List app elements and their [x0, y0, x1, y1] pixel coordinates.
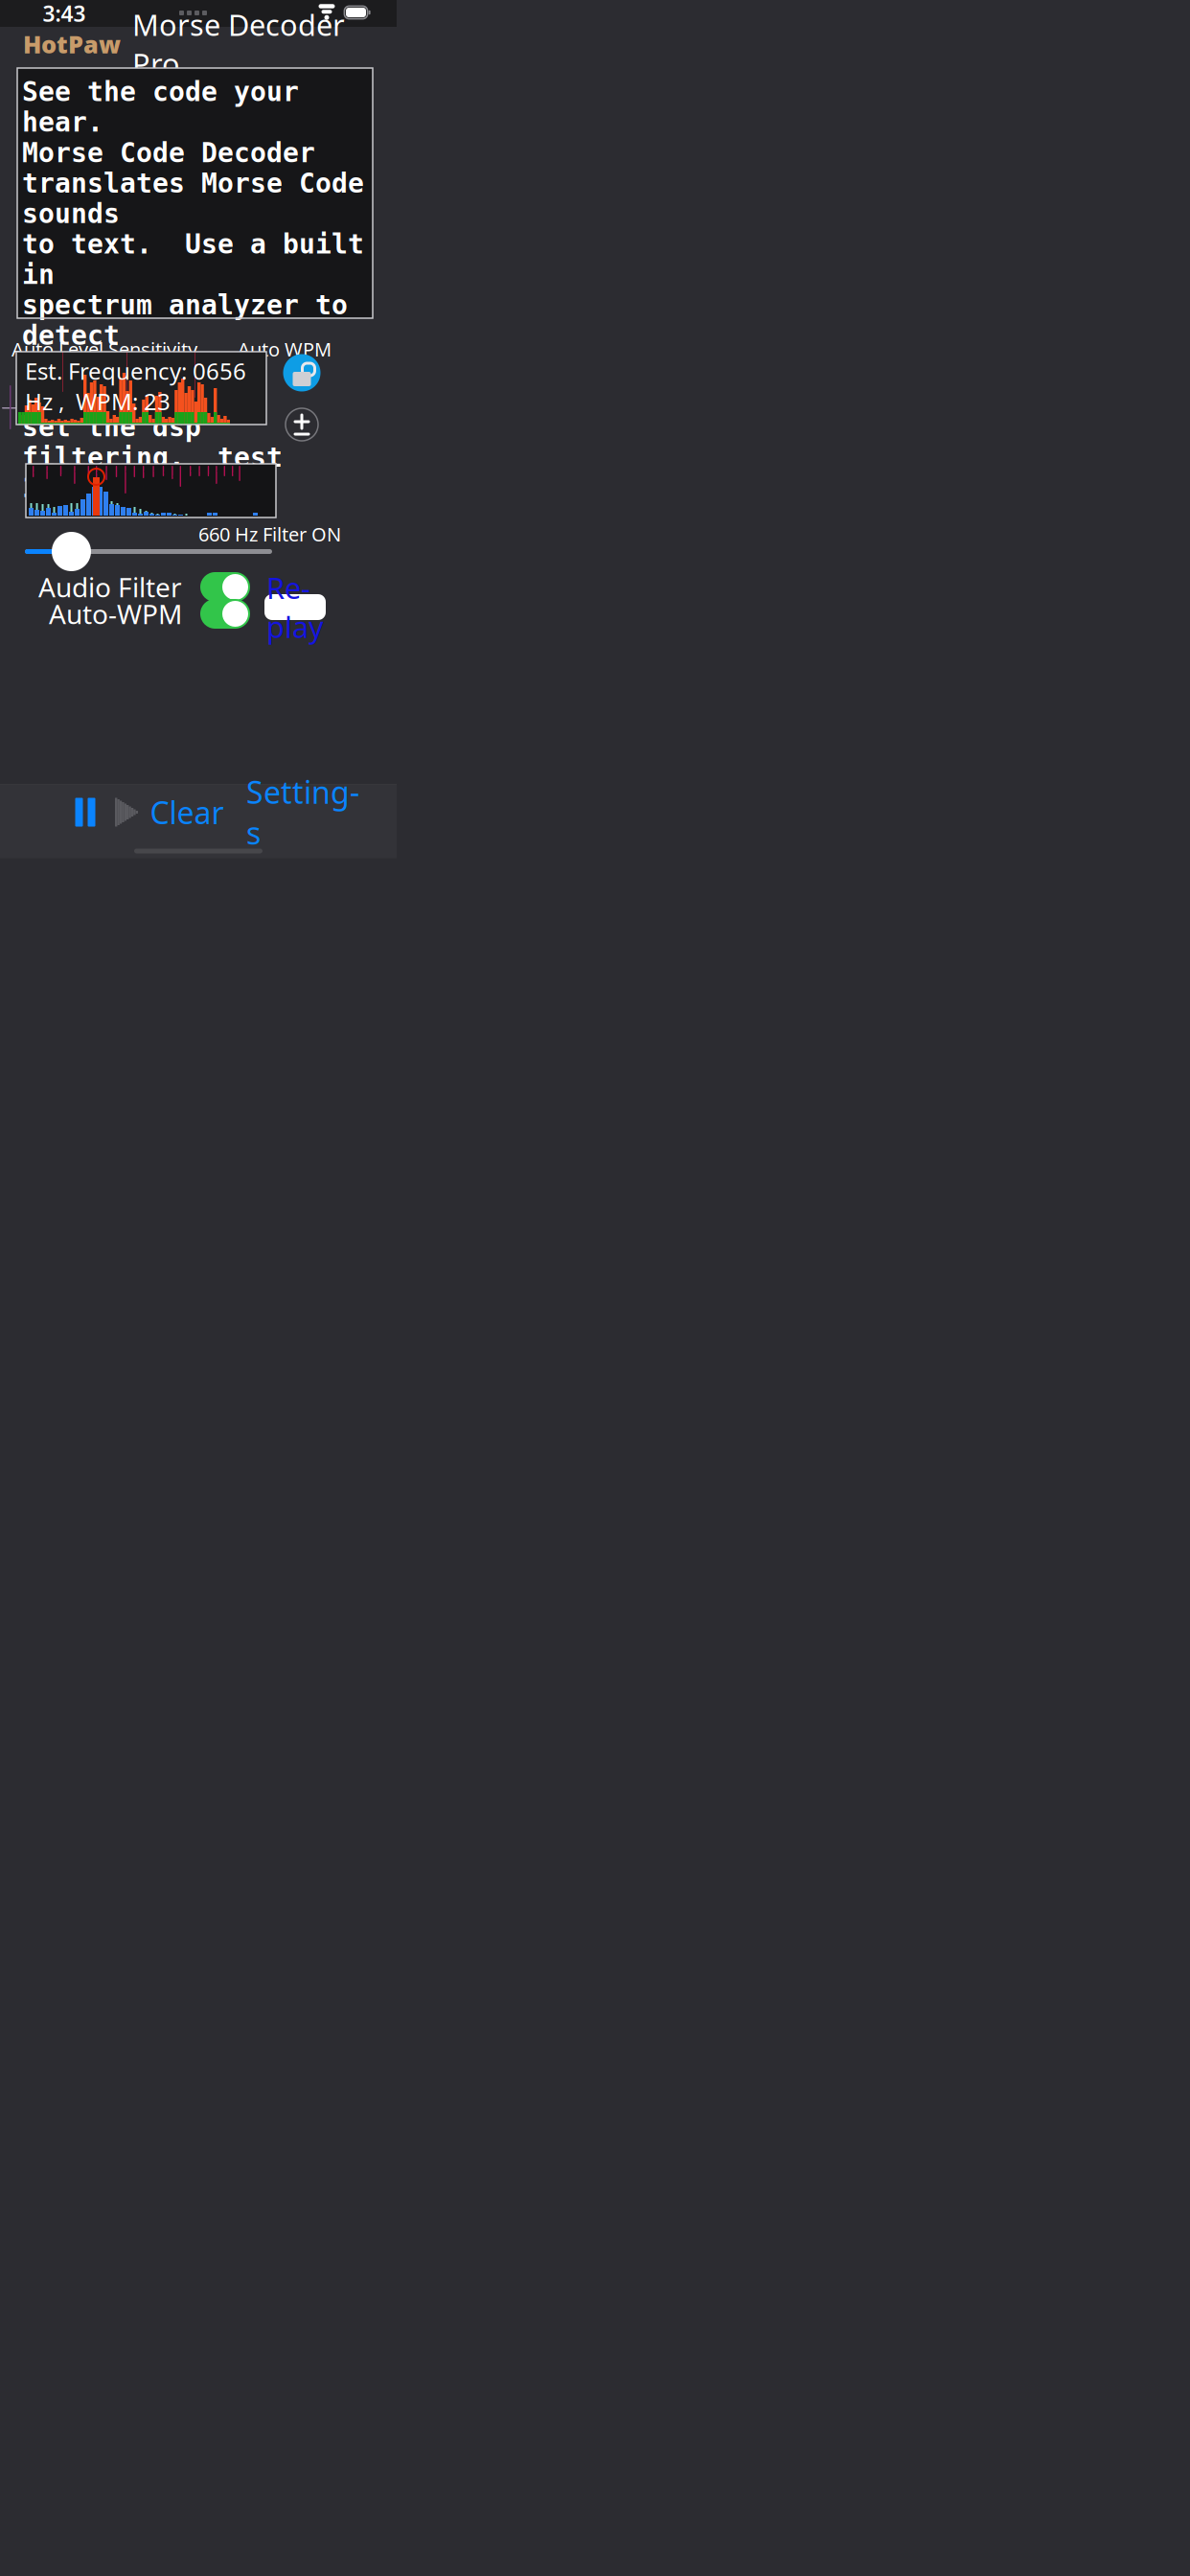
button[interactable]: Toggle: [200, 572, 250, 602]
staticText: the audio tone frequency and: [22, 351, 250, 412]
staticText: 123 abc: [22, 473, 136, 503]
button[interactable]: Play: [107, 791, 146, 833]
staticText: to text. Use a built in: [22, 229, 364, 290]
staticText: 660 Hz Filter ON: [198, 521, 341, 547]
staticText: Est. Frequency: 0656 Hz , WPM: 23: [25, 356, 246, 417]
button[interactable]: Adjust sensitivity: [283, 405, 321, 444]
button[interactable]: Clear: [144, 791, 230, 833]
staticText: See the code your hear.: [22, 77, 299, 138]
staticText: Settings: [246, 771, 359, 853]
button[interactable]: Pause: [63, 791, 107, 833]
staticText: Audio Filter: [38, 569, 182, 605]
button[interactable]: Settings: [245, 791, 360, 833]
button[interactable]: Toggle: [200, 599, 250, 629]
staticText: Clear: [150, 792, 224, 833]
staticText: HotPaw: [23, 28, 121, 60]
staticText: Morse Decoder Pro: [132, 5, 345, 83]
staticText: Auto WPM: [238, 336, 332, 362]
staticText: 3:43: [43, 0, 86, 28]
staticText: Auto-WPM: [49, 596, 182, 632]
staticText: spectrum analyzer to detect: [22, 290, 348, 351]
button[interactable]: Lock frequency: [281, 352, 323, 394]
staticText: Morse Code Decoder: [22, 138, 315, 168]
staticText: translates Morse Code sounds: [22, 168, 364, 229]
staticText: set the dsp filtering. test: [22, 412, 283, 473]
staticText: Replay: [266, 568, 324, 646]
staticText: Auto Level Sensitivity: [11, 336, 197, 362]
button[interactable]: Replay: [264, 594, 326, 620]
